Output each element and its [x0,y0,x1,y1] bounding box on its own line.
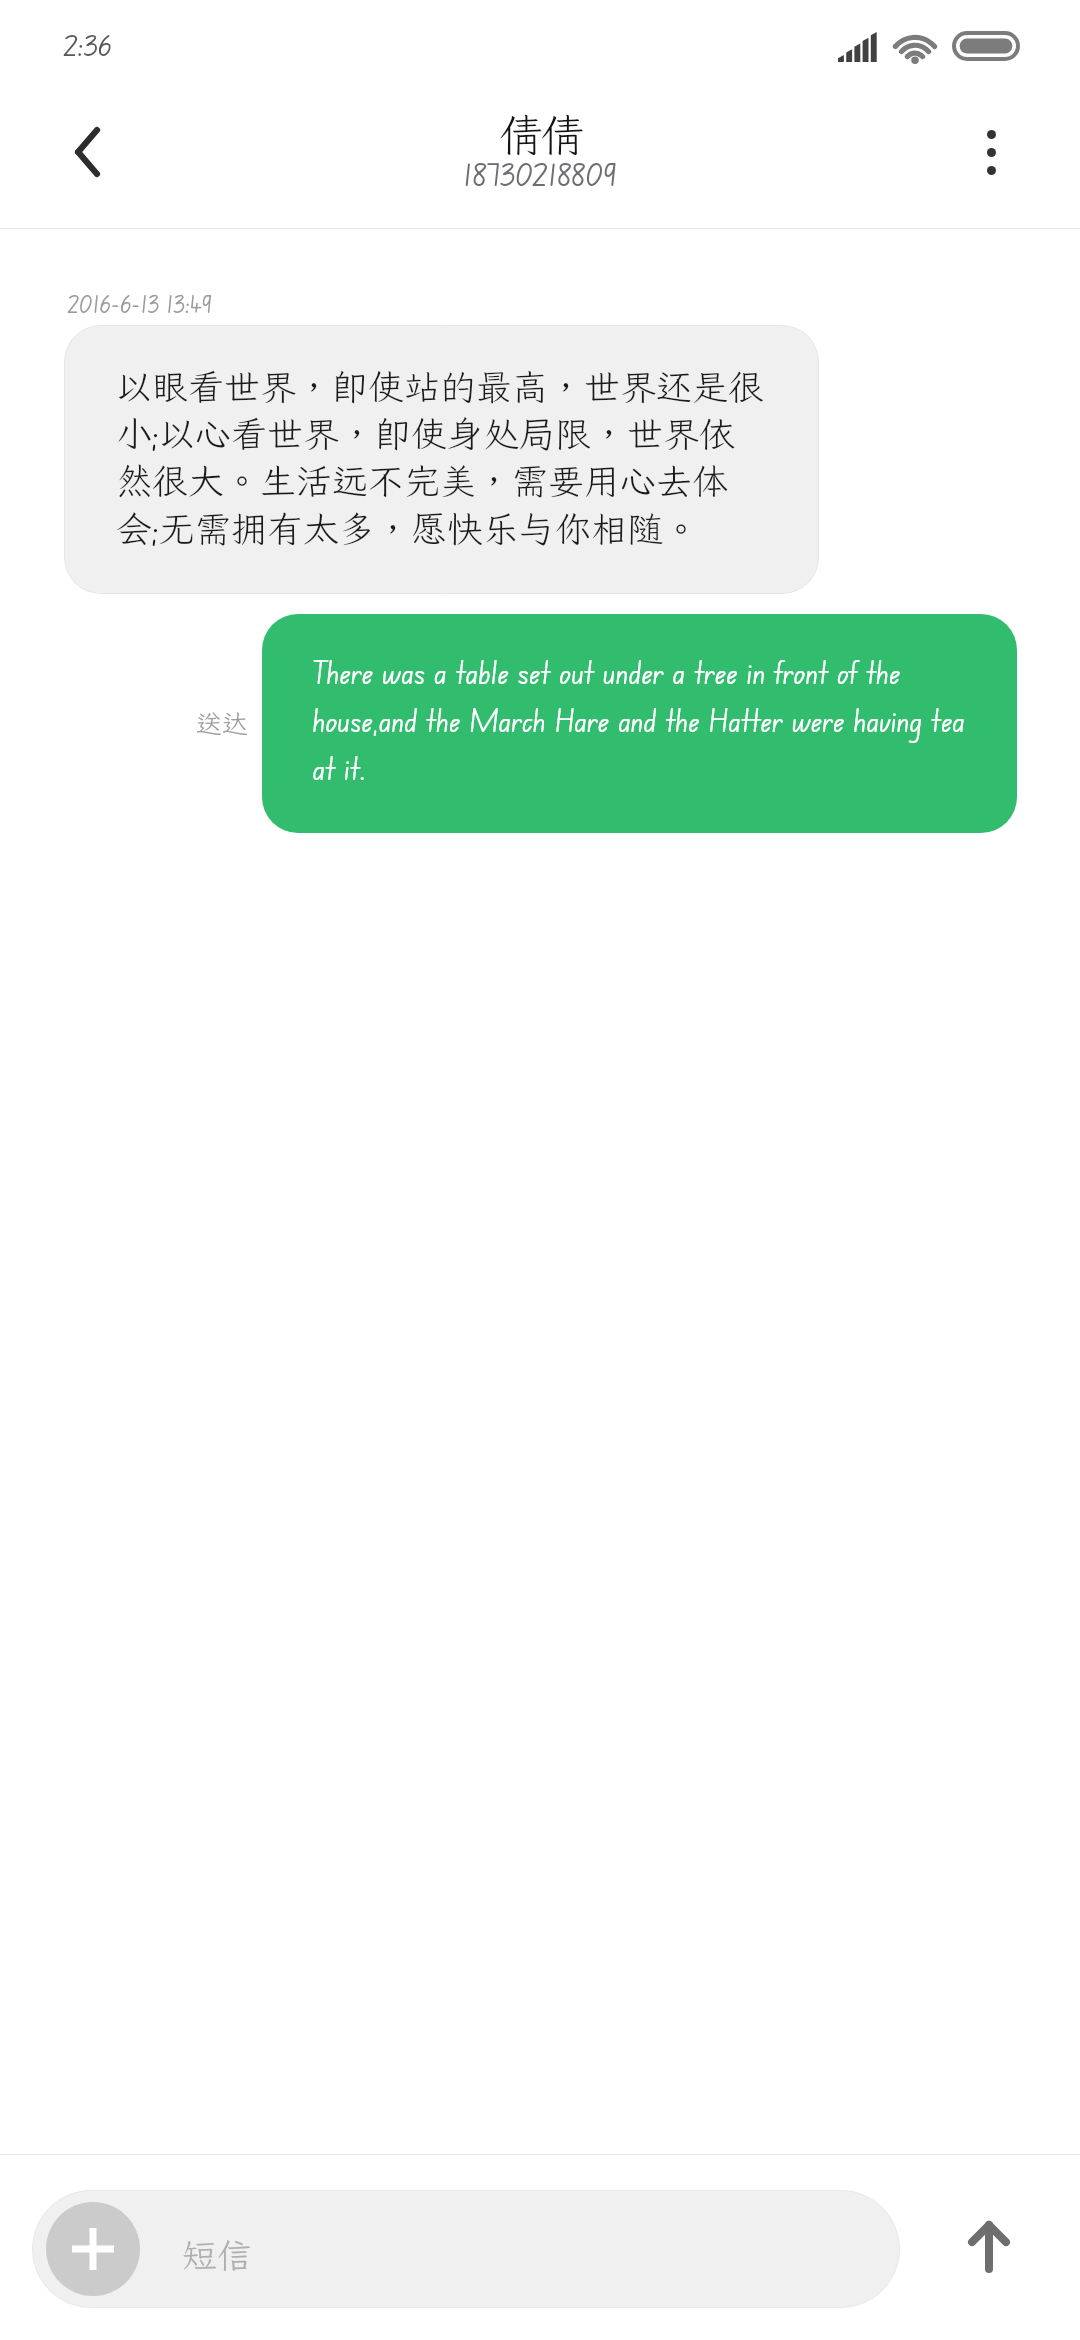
staticText: 2:36 [64,25,113,64]
staticText: 倩倩 [499,106,582,164]
staticText: 短信 [182,2232,253,2278]
button[interactable]: More options [928,89,1054,215]
staticText: There was a table set out under a tree i… [313,651,973,788]
staticText: 2016-6-13 13:49 [68,288,213,320]
button[interactable]: Add attachment [32,2190,900,2308]
button[interactable]: Add attachment [46,2202,140,2296]
staticText: 送达 [196,706,249,740]
button[interactable]: Send [929,2190,1049,2300]
button[interactable]: Back [23,89,149,215]
staticText: 以眼看世界，即使站的最高，世界还是很小;以心看世界，即使身处局限，世界依然很大。… [116,363,767,553]
button[interactable]: There was a table set out under a tree i… [262,614,1017,833]
staticText: 18730218809 [463,152,618,194]
button[interactable]: 以眼看世界，即使站的最高，世界还是很小;以心看世界，即使身处局限，世界依然很大。… [64,325,819,594]
